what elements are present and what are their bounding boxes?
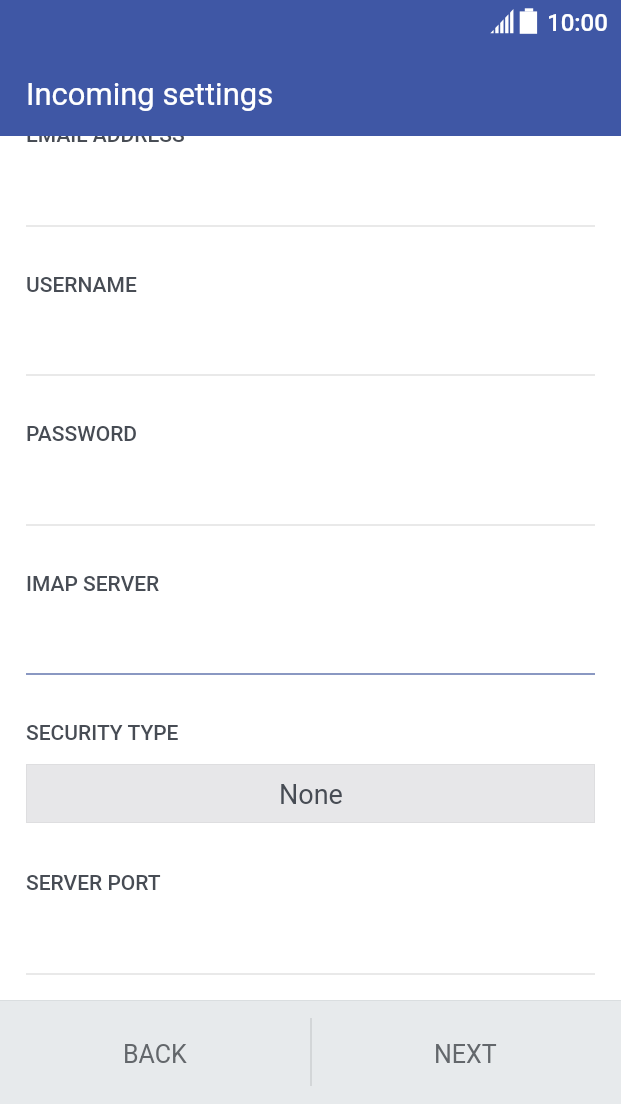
button[interactable]: BACK: [0, 1000, 310, 1104]
button[interactable]: None: [27, 765, 594, 822]
button[interactable]: [26, 374, 595, 526]
button[interactable]: [26, 823, 595, 975]
staticText: Incoming settings: [26, 76, 274, 112]
button[interactable]: [26, 136, 595, 227]
other: Signal strength and battery level: [0, 0, 621, 44]
button[interactable]: [26, 225, 595, 376]
button[interactable]: [26, 524, 595, 675]
staticText: BACK: [123, 1040, 187, 1069]
staticText: None: [279, 779, 343, 811]
staticText: USERNAME: [26, 273, 137, 298]
staticText: IMAP SERVER: [26, 572, 160, 597]
button[interactable]: NEXT: [310, 1000, 621, 1104]
staticText: NEXT: [434, 1040, 497, 1069]
staticText: SECURITY TYPE: [26, 721, 179, 746]
staticText: PASSWORD: [26, 422, 138, 447]
staticText: 10:00: [547, 9, 608, 37]
staticText: SERVER PORT: [26, 871, 161, 896]
staticText: EMAIL ADDRESS: [26, 123, 185, 148]
